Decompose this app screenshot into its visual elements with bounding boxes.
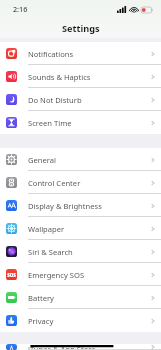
staticText: 2:16 bbox=[13, 4, 28, 14]
staticText: Notifications bbox=[28, 49, 74, 59]
button[interactable]: General bbox=[0, 148, 161, 171]
staticText: Sounds & Haptics bbox=[28, 72, 91, 82]
staticText: Emergency SOS bbox=[28, 270, 85, 280]
staticText: Do Not Disturb bbox=[28, 95, 82, 105]
staticText: Siri & Search bbox=[28, 247, 73, 257]
staticText: Display & Brightness bbox=[28, 201, 102, 211]
staticText: Screen Time bbox=[28, 118, 72, 128]
staticText: General bbox=[28, 155, 56, 165]
button[interactable]: Display & Brightness bbox=[0, 194, 161, 217]
button[interactable]: Battery bbox=[0, 286, 161, 309]
button[interactable]: Siri & Search bbox=[0, 240, 161, 263]
button[interactable]: Control Center bbox=[0, 171, 161, 194]
button[interactable]: Do Not Disturb bbox=[0, 88, 161, 111]
button[interactable]: Sounds & Haptics bbox=[0, 65, 161, 88]
button[interactable]: Notifications bbox=[0, 42, 161, 65]
staticText: Wallpaper bbox=[28, 224, 65, 234]
staticText: Privacy bbox=[28, 316, 54, 326]
button[interactable]: Privacy bbox=[0, 309, 161, 332]
staticText: Settings bbox=[62, 22, 100, 35]
button[interactable]: Screen Time bbox=[0, 111, 161, 134]
button[interactable]: iTunes & App Store bbox=[0, 344, 161, 350]
staticText: iTunes & App Store bbox=[28, 344, 96, 350]
button[interactable]: SOS bbox=[0, 263, 161, 286]
staticText: Battery bbox=[28, 293, 54, 303]
button[interactable]: Wallpaper bbox=[0, 217, 161, 240]
staticText: Control Center bbox=[28, 178, 81, 188]
staticText: SOS bbox=[7, 272, 16, 278]
